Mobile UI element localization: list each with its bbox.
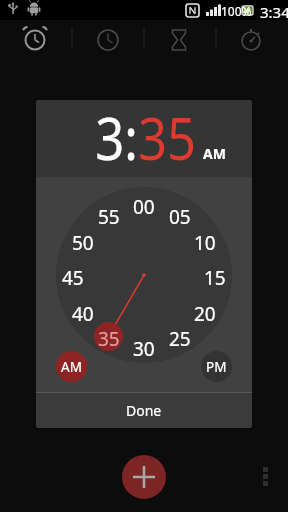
staticText: 05 <box>169 204 191 224</box>
button[interactable]: AM <box>56 351 87 382</box>
staticText: 00 <box>133 194 155 214</box>
button[interactable] <box>260 466 274 490</box>
staticText: 10 <box>194 230 216 250</box>
staticText: 40 <box>72 301 94 321</box>
staticText: PM <box>206 358 227 376</box>
button[interactable]: Done <box>36 393 252 428</box>
staticText: 3:34 <box>260 2 288 22</box>
button[interactable] <box>216 20 288 64</box>
staticText: 30 <box>133 336 155 356</box>
staticText: 55 <box>98 204 120 224</box>
staticText: 20 <box>194 301 216 321</box>
staticText: 35 <box>98 326 120 346</box>
staticText: 100% <box>221 3 252 19</box>
staticText: 3:35 <box>95 100 197 175</box>
staticText: 15 <box>204 265 226 285</box>
button[interactable]: PM <box>201 351 232 382</box>
staticText: AM <box>61 358 82 376</box>
staticText: 45 <box>62 265 84 285</box>
staticText: AM <box>203 144 226 163</box>
button[interactable] <box>72 20 144 64</box>
staticText: 25 <box>169 326 191 346</box>
button[interactable] <box>122 455 166 499</box>
staticText: 50 <box>72 230 94 250</box>
button[interactable] <box>144 20 216 64</box>
staticText: Done <box>126 401 162 420</box>
button[interactable] <box>0 20 72 64</box>
